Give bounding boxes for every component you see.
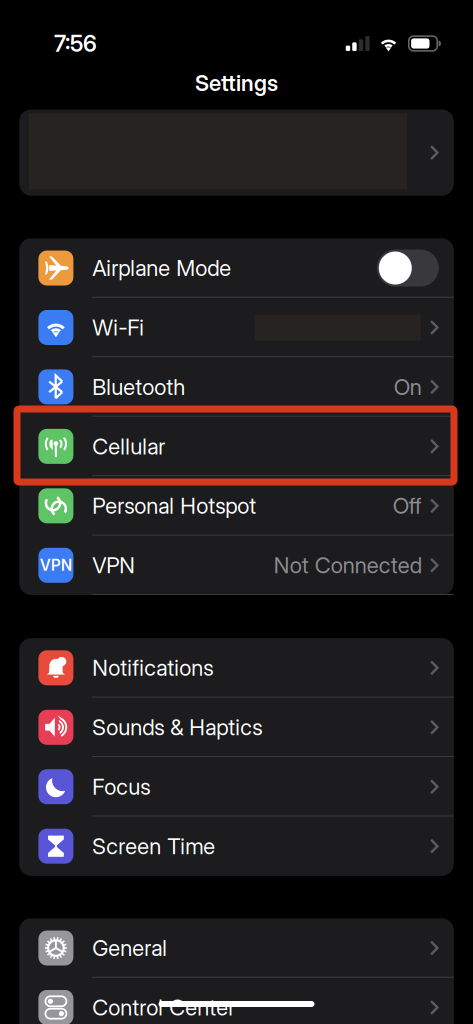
button[interactable]: Notifications — [19, 638, 454, 698]
staticText: Cellular — [92, 433, 165, 460]
staticText: Not Connected — [274, 552, 422, 579]
staticText: 7:56 — [54, 30, 97, 57]
button[interactable]: Cellular — [19, 417, 454, 476]
button[interactable]: Screen Time — [19, 816, 454, 876]
staticText: Bluetooth — [92, 374, 185, 400]
staticText: Focus — [92, 773, 150, 800]
staticText: Screen Time — [92, 833, 215, 859]
button[interactable]: Bluetooth — [19, 357, 454, 417]
staticText: VPN — [40, 556, 72, 575]
button[interactable]: General — [19, 918, 454, 978]
staticText: Settings — [195, 70, 278, 96]
staticText: Sounds & Haptics — [92, 714, 262, 741]
staticText: Off — [393, 492, 422, 519]
button[interactable]: Airplane Mode — [377, 249, 439, 286]
button[interactable]: Airplane Mode — [19, 238, 454, 298]
staticText: Airplane Mode — [92, 255, 231, 281]
staticText: General — [92, 935, 167, 961]
button[interactable]: Sounds & Haptics — [19, 698, 454, 757]
button[interactable]: Focus — [19, 757, 454, 816]
staticText: Control Center — [92, 994, 235, 1021]
staticText: Wi-Fi — [92, 314, 144, 341]
button[interactable]: Wi-Fi — [19, 298, 454, 357]
staticText: Personal Hotspot — [92, 492, 256, 519]
button[interactable]: VPN — [19, 535, 454, 595]
button[interactable]: Apple Account — [19, 109, 454, 196]
staticText: On — [394, 374, 422, 400]
staticText: Notifications — [92, 654, 213, 681]
button[interactable]: Personal Hotspot — [19, 476, 454, 536]
staticText: VPN — [92, 552, 135, 579]
button[interactable]: Control Center — [19, 978, 454, 1024]
